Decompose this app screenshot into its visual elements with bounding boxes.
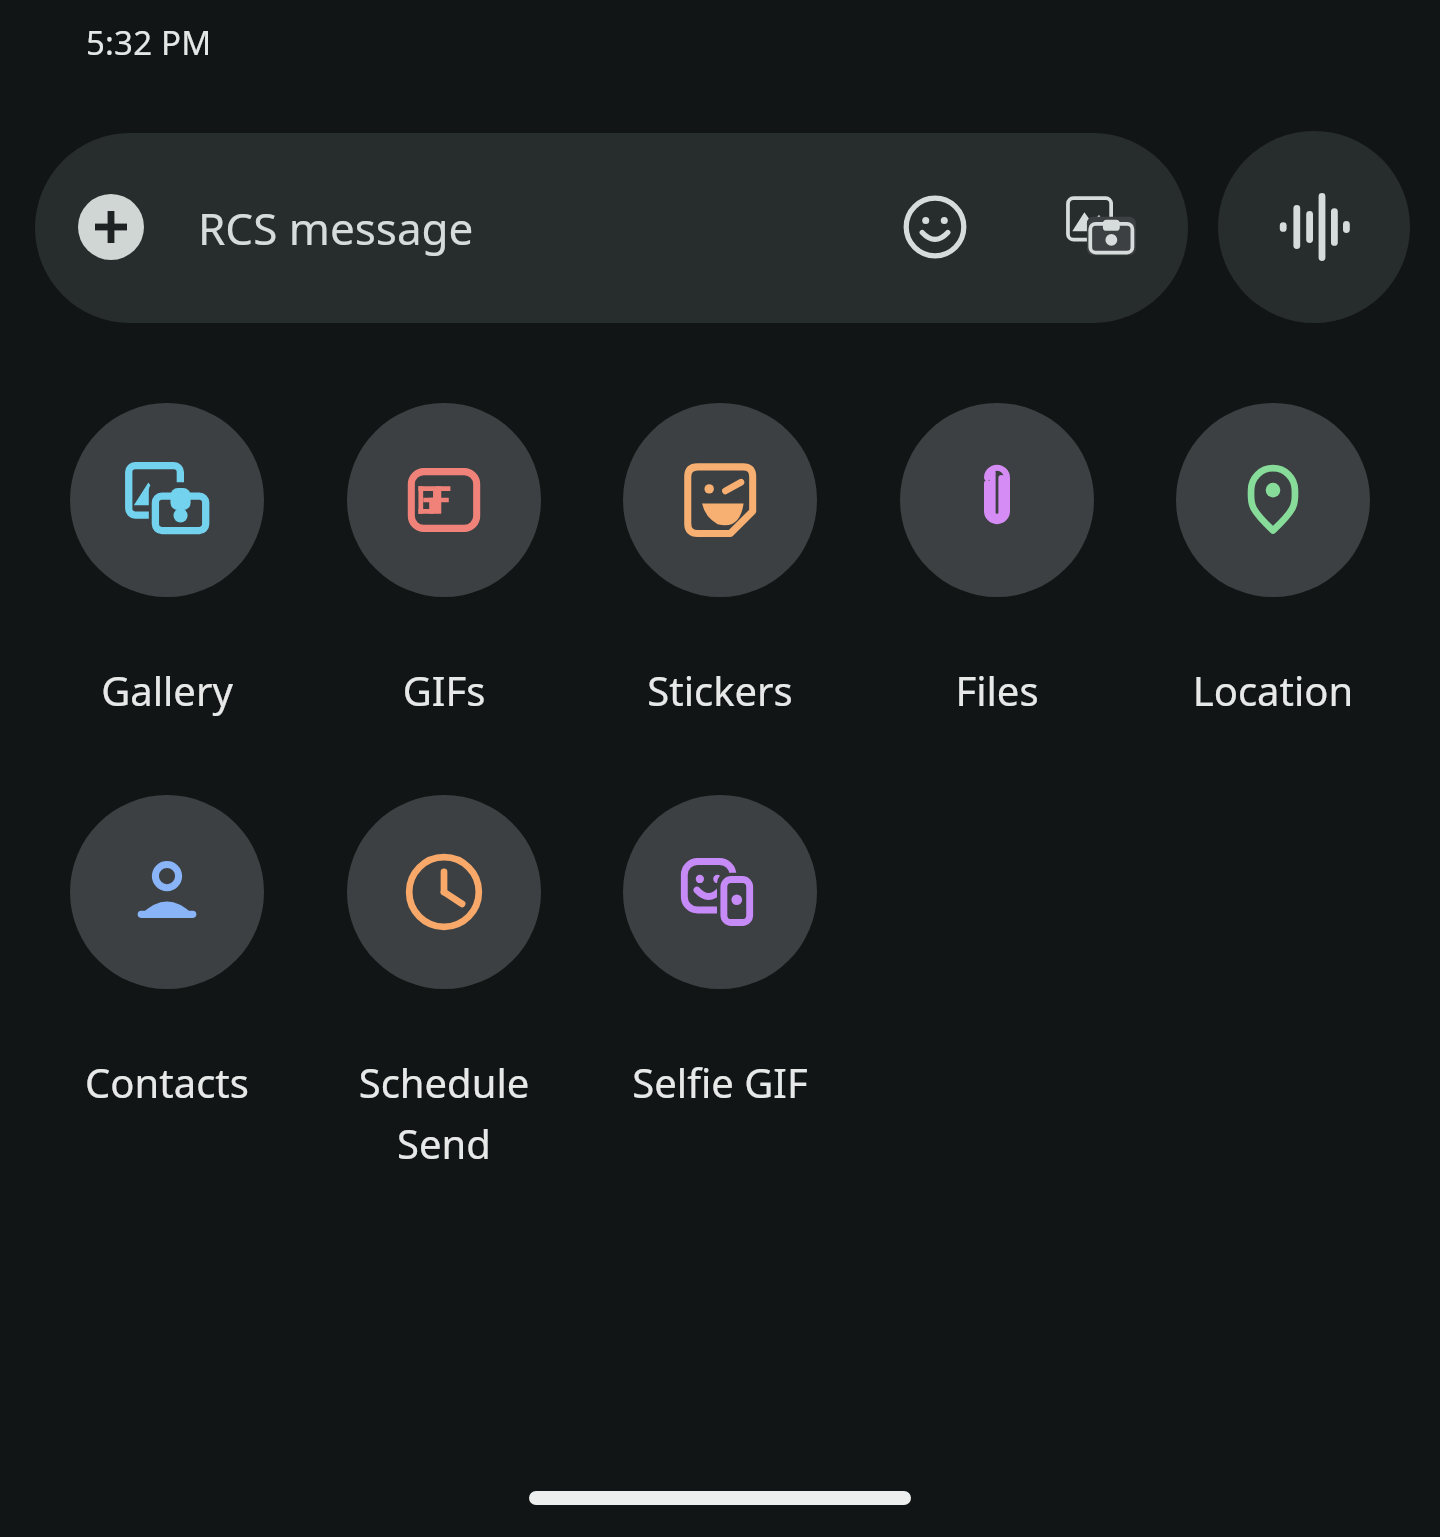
staticText: Location [1135, 663, 1411, 717]
button[interactable]: Files [859, 395, 1135, 717]
staticText: Schedule Send [306, 1055, 582, 1171]
staticText: Stickers [582, 663, 858, 717]
staticText: 5:32 PM [86, 20, 212, 65]
other: Stickers [623, 403, 817, 597]
other: Gallery [70, 403, 264, 597]
other: Contacts [70, 795, 264, 989]
other: Files [900, 403, 1094, 597]
other: Schedule send [347, 795, 541, 989]
button[interactable]: Location [1135, 395, 1411, 717]
button[interactable]: GIFs [306, 395, 582, 717]
staticText: Contacts [29, 1055, 305, 1109]
button[interactable]: Add attachment [78, 194, 144, 260]
button[interactable]: Emoji [890, 182, 980, 272]
button[interactable]: Gallery [29, 395, 305, 717]
button[interactable]: Selfie GIF [582, 787, 858, 1109]
staticText: GIFs [306, 663, 582, 717]
other: Selfie GIF [623, 795, 817, 989]
button[interactable]: Gallery and camera [1053, 180, 1147, 274]
button[interactable]: Contacts [29, 787, 305, 1109]
button[interactable]: Add attachment [35, 133, 1188, 323]
staticText: RCS message [198, 198, 474, 258]
button[interactable]: Stickers [582, 395, 858, 717]
staticText: Selfie GIF [582, 1055, 858, 1109]
other: Location [1176, 403, 1370, 597]
staticText: Gallery [29, 663, 305, 717]
other: GIFs [347, 403, 541, 597]
button[interactable]: Schedule send [306, 787, 582, 1171]
button[interactable]: Record audio message [1218, 131, 1410, 323]
staticText: Files [859, 663, 1135, 717]
